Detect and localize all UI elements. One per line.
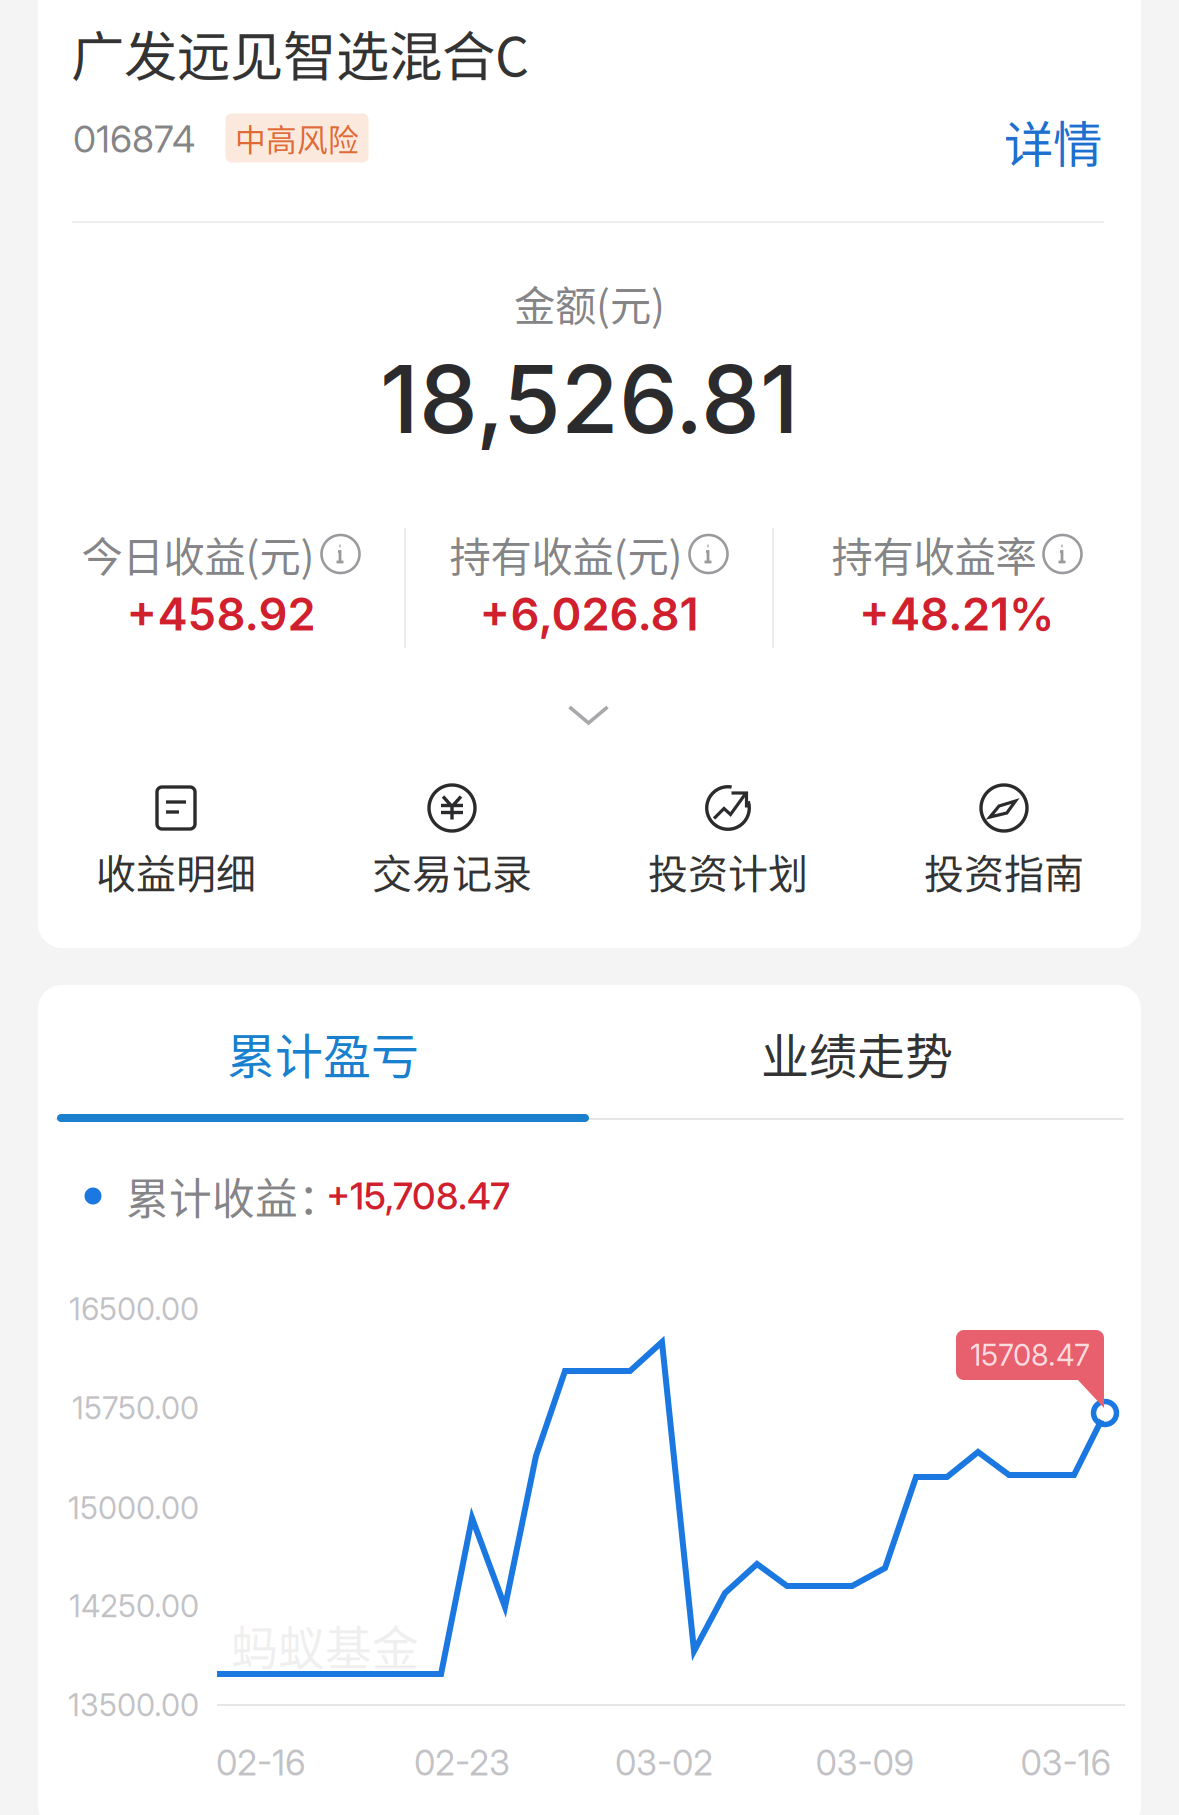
staticText: 15708.47	[970, 1337, 1090, 1373]
staticText: +458.92	[126, 587, 315, 641]
staticText: 15750.00	[72, 1389, 199, 1426]
staticText: 业绩走势	[761, 1018, 953, 1088]
staticText: 14250.00	[69, 1587, 199, 1624]
staticText: 金额(元)	[514, 273, 665, 333]
staticText: +6,026.81	[479, 587, 698, 641]
button[interactable]: 投资指南	[869, 780, 1139, 910]
staticText: 累计收益：	[126, 1165, 341, 1227]
staticText: 13500.00	[68, 1686, 199, 1723]
staticText: 03-16	[1020, 1742, 1111, 1784]
staticText: 02-23	[414, 1742, 510, 1784]
staticText: 蚂蚁基金	[231, 1611, 419, 1679]
button[interactable]: 中高风险	[225, 113, 368, 162]
staticText: 今日收益(元)	[81, 524, 314, 584]
button[interactable]: 投资计划	[593, 780, 863, 910]
staticText: 持有收益率	[831, 524, 1036, 584]
staticText: 投资指南	[924, 842, 1084, 900]
button[interactable]: 展开更多	[567, 705, 611, 729]
staticText: 广发远见智选混合C	[71, 14, 529, 92]
staticText: 18,526.81	[380, 342, 799, 455]
staticText: 交易记录	[372, 842, 532, 900]
button[interactable]: 收益明细	[41, 780, 311, 910]
button[interactable]: 详情	[993, 106, 1113, 176]
staticText: 中高风险	[235, 116, 359, 160]
staticText: 投资计划	[648, 842, 808, 900]
staticText: 02-16	[216, 1742, 306, 1784]
staticText: 016874	[73, 116, 195, 162]
staticText: 累计盈亏	[227, 1018, 419, 1088]
staticText: 16500.00	[69, 1290, 199, 1327]
button[interactable]: 累计盈亏	[53, 989, 593, 1117]
staticText: 持有收益(元)	[449, 524, 682, 584]
staticText: 收益明细	[96, 842, 256, 900]
button[interactable]: 交易记录	[317, 780, 587, 910]
staticText: 15000.00	[68, 1489, 199, 1526]
staticText: 详情	[1004, 105, 1102, 177]
staticText: 03-09	[815, 1742, 914, 1784]
staticText: +48.21%	[859, 587, 1055, 641]
button[interactable]: 业绩走势	[587, 989, 1127, 1117]
staticText: 03-02	[615, 1742, 713, 1784]
staticText: +15,708.47	[326, 1173, 510, 1219]
